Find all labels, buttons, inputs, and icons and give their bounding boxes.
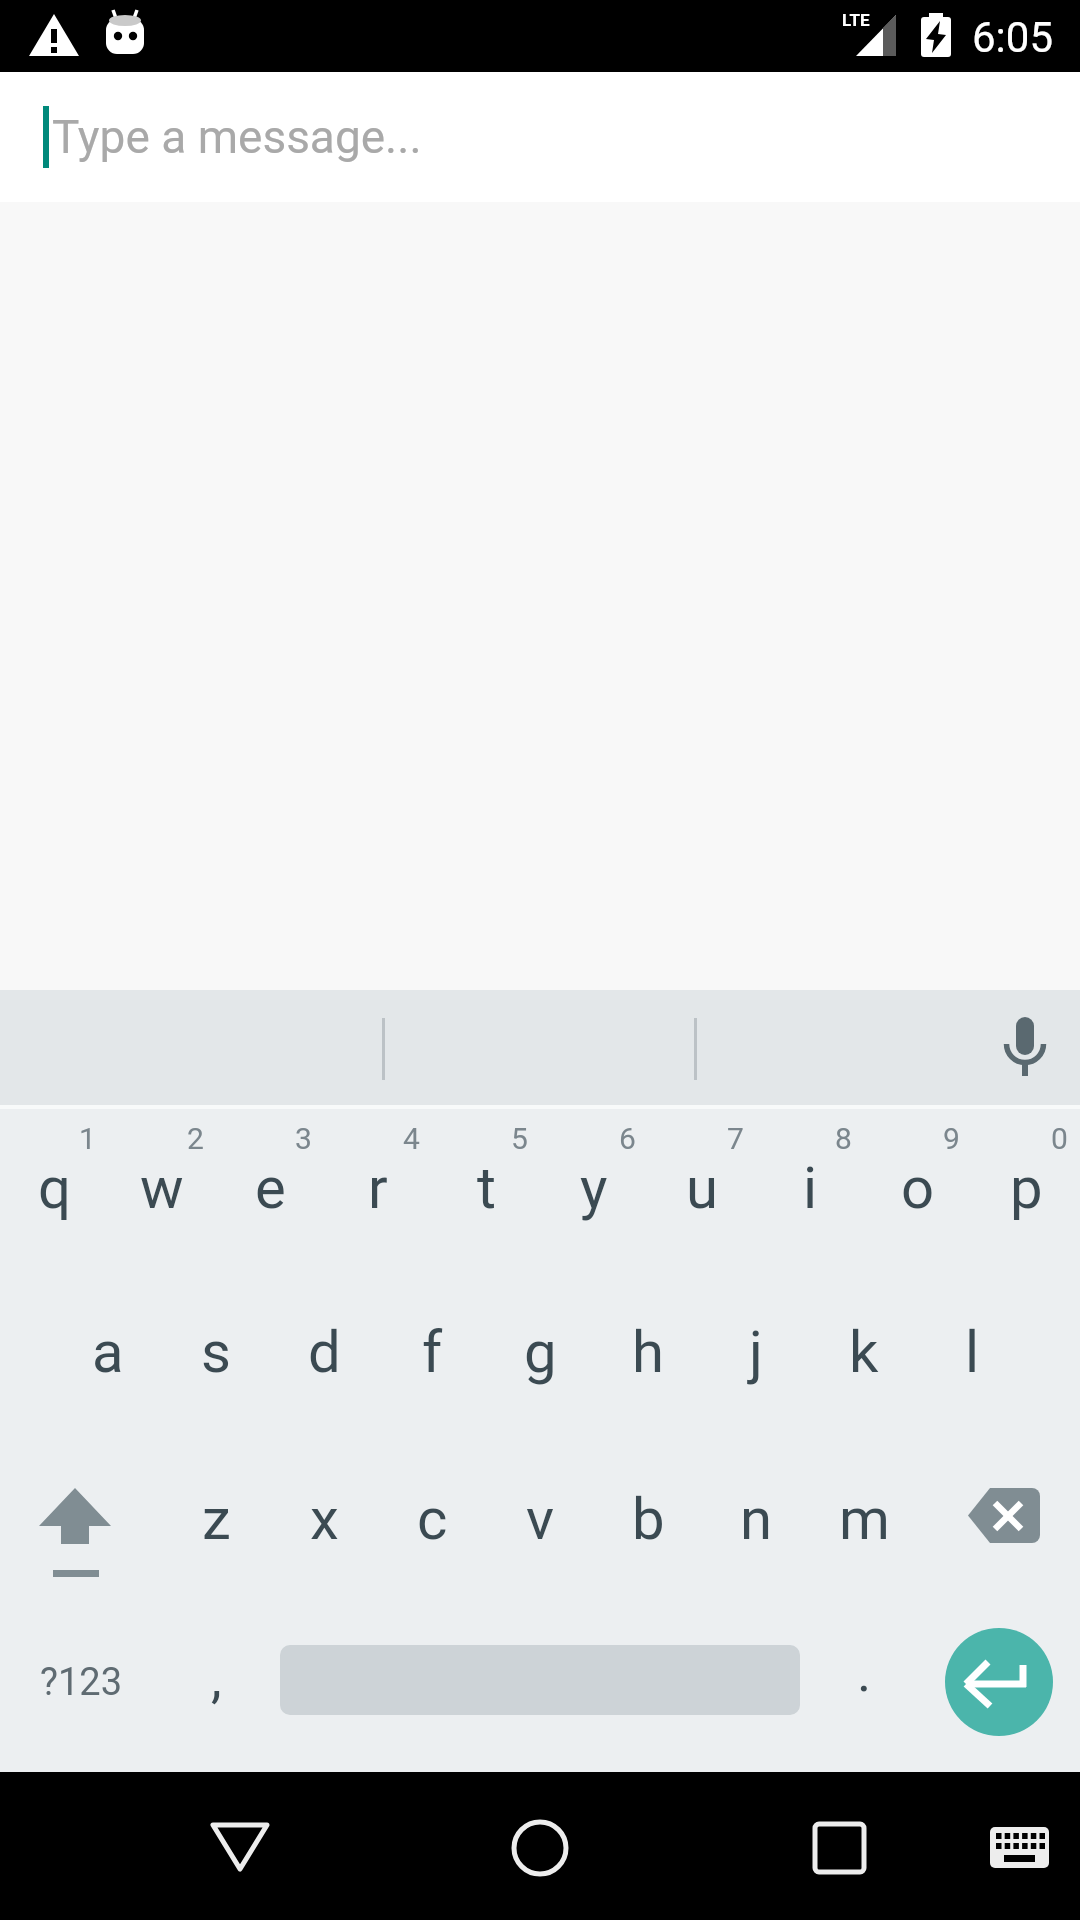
staticText: r <box>368 1154 388 1222</box>
button[interactable]: 8 <box>756 1105 864 1272</box>
button[interactable]: 0 <box>972 1105 1080 1272</box>
button[interactable]: b <box>594 1439 702 1606</box>
staticText: Type a message... <box>52 110 422 164</box>
button[interactable]: Type a message... <box>0 72 1080 202</box>
button[interactable]: a <box>54 1272 162 1439</box>
staticText: w <box>140 1154 184 1222</box>
button[interactable]: 4 <box>324 1105 432 1272</box>
staticText: LTE <box>842 10 870 30</box>
button[interactable] <box>480 1782 600 1910</box>
staticText: m <box>839 1485 890 1553</box>
staticText: t <box>477 1154 496 1222</box>
staticText: . <box>857 1641 872 1704</box>
staticText: l <box>965 1318 980 1386</box>
staticText: 4 <box>403 1121 420 1156</box>
staticText: s <box>201 1318 231 1386</box>
staticText: o <box>901 1154 935 1222</box>
staticText: 3 <box>295 1121 312 1156</box>
staticText: g <box>524 1318 557 1386</box>
button[interactable]: 9 <box>864 1105 972 1272</box>
button[interactable]: v <box>486 1439 594 1606</box>
staticText: 7 <box>727 1121 744 1156</box>
button[interactable] <box>918 1439 1080 1606</box>
staticText: 5 <box>511 1121 528 1156</box>
staticText: c <box>417 1485 448 1553</box>
staticText: b <box>632 1485 665 1553</box>
staticText: 9 <box>943 1121 960 1156</box>
staticText: 6:05 <box>972 13 1053 62</box>
staticText: a <box>92 1318 124 1386</box>
button[interactable]: m <box>810 1439 918 1606</box>
staticText: p <box>1010 1154 1043 1222</box>
button[interactable]: 1 <box>0 1105 108 1272</box>
button[interactable]: x <box>270 1439 378 1606</box>
button[interactable]: n <box>702 1439 810 1606</box>
button[interactable]: c <box>378 1439 486 1606</box>
staticText: z <box>202 1485 231 1553</box>
button[interactable]: h <box>594 1272 702 1439</box>
staticText: h <box>632 1318 664 1386</box>
staticText: n <box>740 1485 773 1553</box>
button[interactable]: , <box>162 1605 270 1772</box>
staticText: 2 <box>187 1121 204 1156</box>
staticText: , <box>211 1647 222 1710</box>
staticText: f <box>422 1318 443 1386</box>
staticText: 1 <box>79 1121 96 1156</box>
button[interactable] <box>270 1605 810 1772</box>
button[interactable]: s <box>162 1272 270 1439</box>
button[interactable]: k <box>810 1272 918 1439</box>
button[interactable]: z <box>162 1439 270 1606</box>
button[interactable]: g <box>486 1272 594 1439</box>
staticText: e <box>255 1154 286 1222</box>
staticText: v <box>526 1485 555 1553</box>
staticText: q <box>38 1154 71 1222</box>
button[interactable]: ?123 <box>0 1605 162 1772</box>
button[interactable] <box>965 1782 1075 1910</box>
staticText: 0 <box>1051 1121 1068 1156</box>
button[interactable]: 3 <box>216 1105 324 1272</box>
staticText: d <box>308 1318 341 1386</box>
button[interactable]: 5 <box>432 1105 540 1272</box>
staticText: ?123 <box>40 1660 123 1705</box>
button[interactable] <box>918 1605 1080 1772</box>
staticText: j <box>749 1318 763 1386</box>
button[interactable] <box>970 992 1080 1103</box>
button[interactable]: d <box>270 1272 378 1439</box>
staticText: u <box>686 1154 718 1222</box>
button[interactable]: j <box>702 1272 810 1439</box>
staticText: x <box>310 1485 339 1553</box>
button[interactable] <box>180 1782 300 1910</box>
staticText: k <box>849 1318 879 1386</box>
staticText: y <box>580 1154 608 1222</box>
staticText: 8 <box>835 1121 852 1156</box>
button[interactable]: f <box>378 1272 486 1439</box>
button[interactable]: . <box>810 1605 918 1772</box>
button[interactable] <box>0 1439 162 1606</box>
button[interactable]: 6 <box>540 1105 648 1272</box>
button[interactable] <box>780 1782 900 1910</box>
staticText: i <box>803 1154 818 1222</box>
staticText: 6 <box>619 1121 636 1156</box>
button[interactable]: 7 <box>648 1105 756 1272</box>
button[interactable]: 2 <box>108 1105 216 1272</box>
button[interactable]: l <box>918 1272 1026 1439</box>
